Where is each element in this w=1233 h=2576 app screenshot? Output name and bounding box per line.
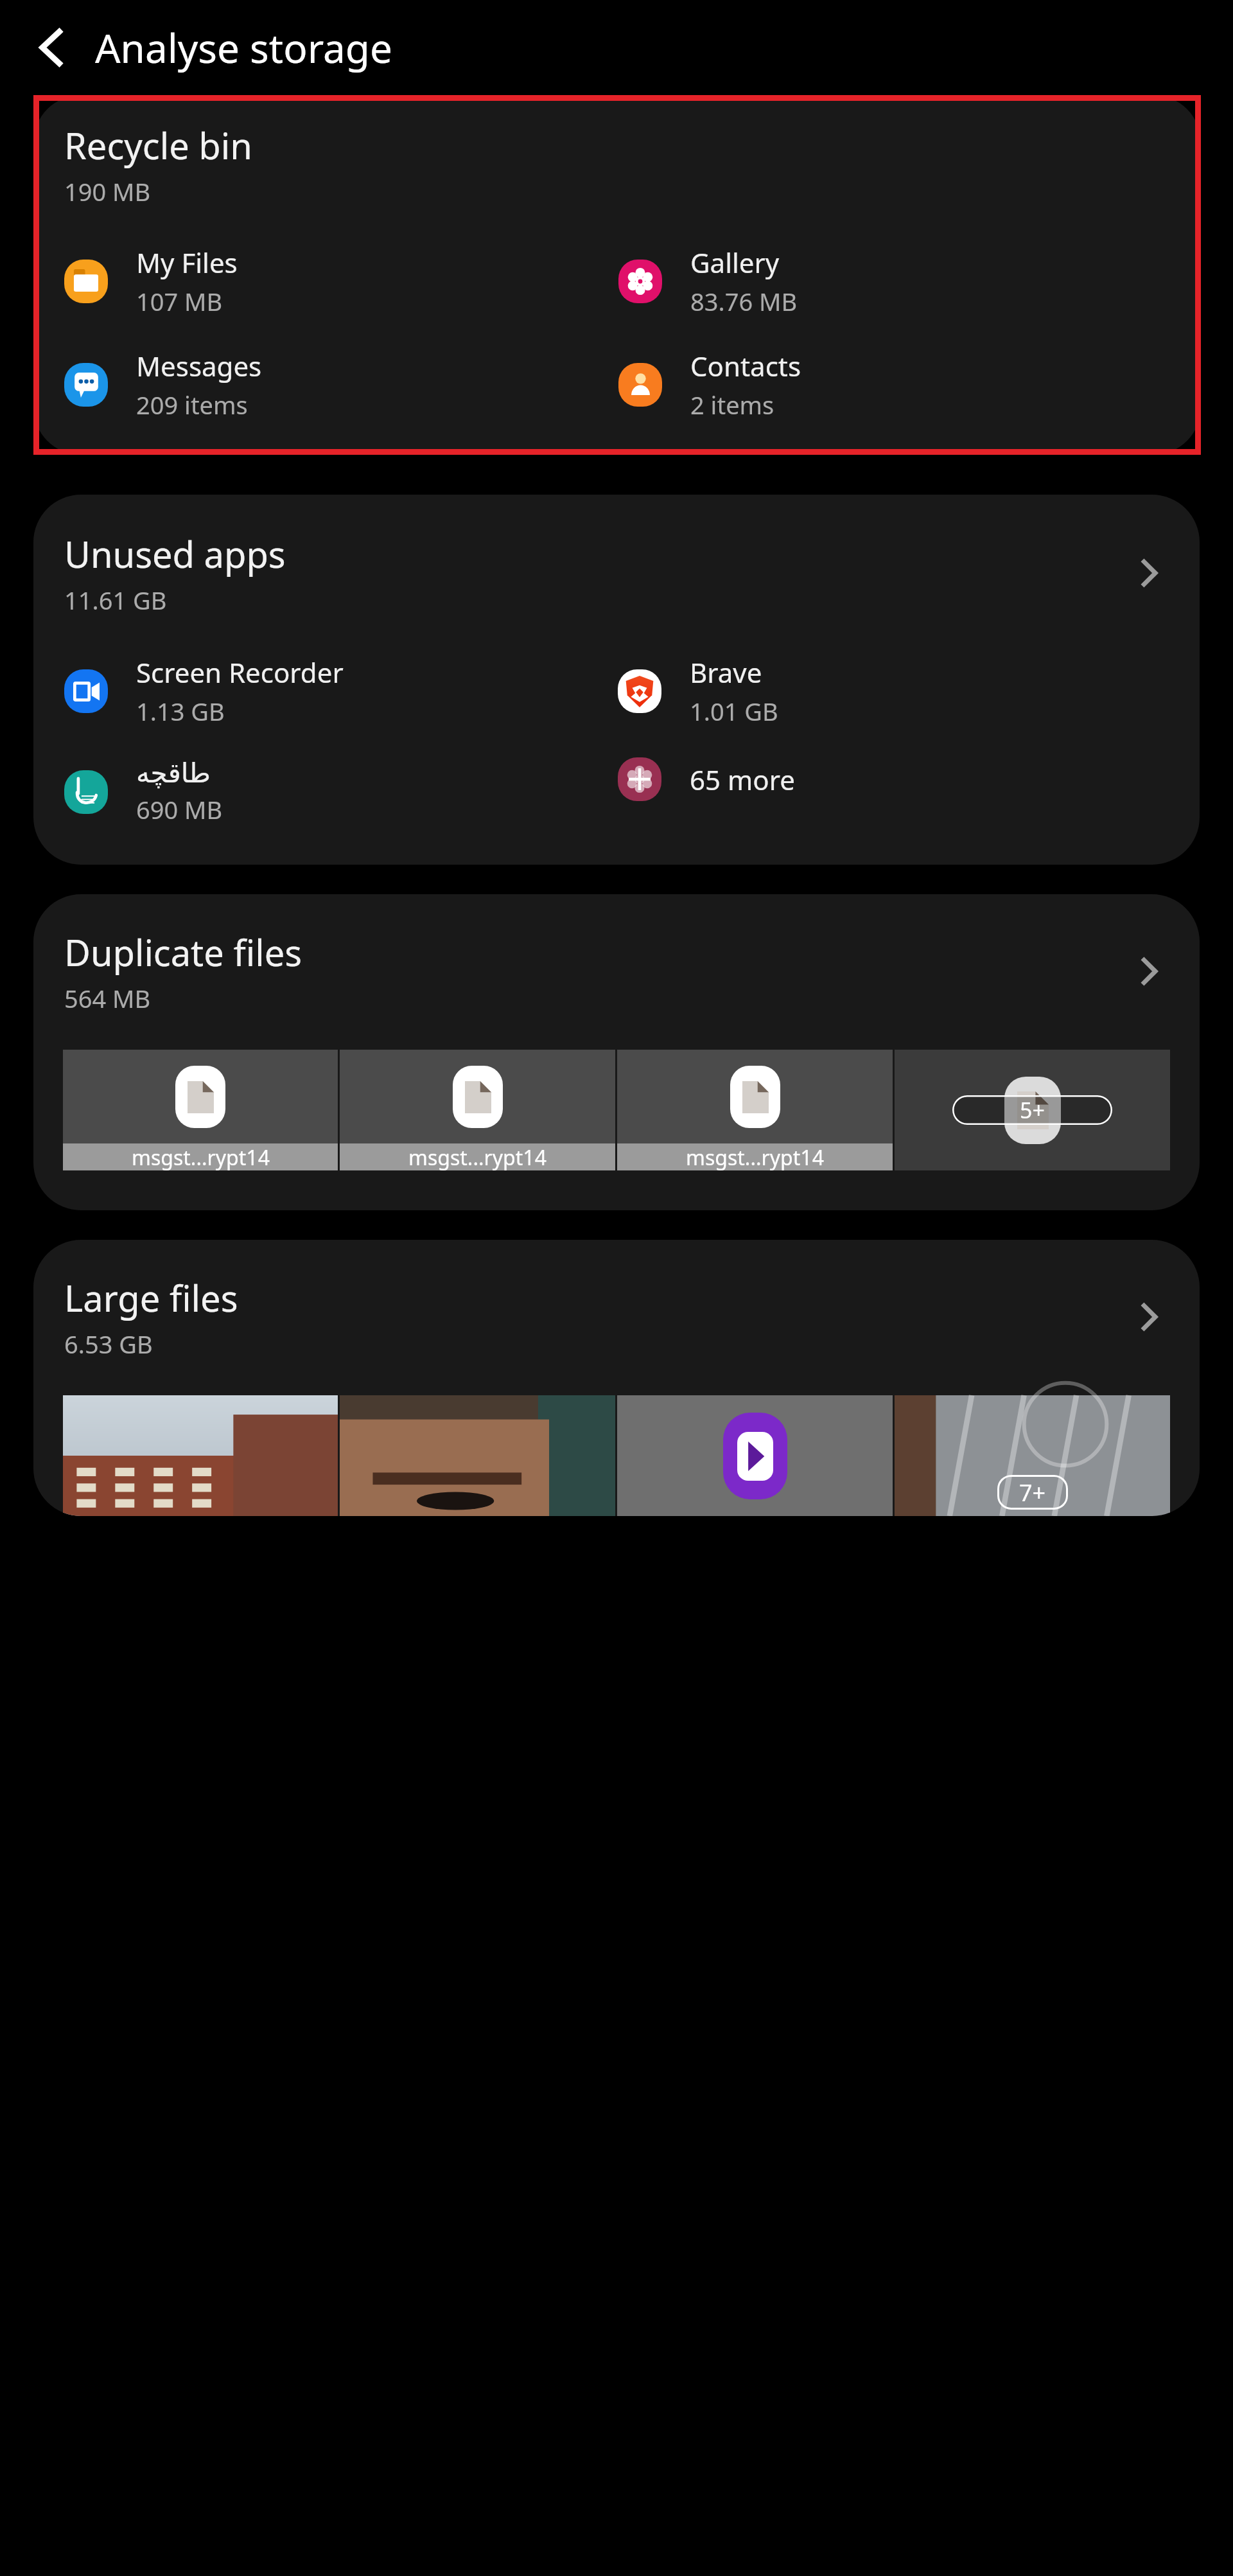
other: Open Duplicate files bbox=[1126, 949, 1171, 994]
staticText: Gallery bbox=[690, 244, 780, 281]
button[interactable]: Messages bbox=[64, 348, 618, 421]
button[interactable]: Gallery bbox=[618, 244, 1173, 318]
staticText: 11.61 GB bbox=[64, 583, 167, 617]
button[interactable] bbox=[340, 1395, 615, 1516]
staticText: Recycle bin bbox=[64, 121, 252, 170]
staticText: 107 MB bbox=[136, 285, 223, 318]
button[interactable]: msgst...rypt14 bbox=[617, 1050, 893, 1170]
staticText: 2 items bbox=[690, 388, 774, 421]
staticText: 1.01 GB bbox=[690, 694, 778, 728]
staticText: 83.76 MB bbox=[690, 285, 798, 318]
button[interactable]: msgst...rypt14 bbox=[340, 1050, 615, 1170]
button[interactable]: 5+ bbox=[895, 1050, 1170, 1170]
staticText: Duplicate files bbox=[64, 928, 302, 976]
button[interactable]: Contacts bbox=[618, 348, 1173, 421]
button[interactable]: msgst...rypt14 bbox=[63, 1050, 338, 1170]
button[interactable]: Recycle bin bbox=[33, 95, 1201, 455]
button[interactable]: طاقچه bbox=[64, 757, 618, 826]
button[interactable]: My Files bbox=[64, 244, 618, 318]
staticText: Large files bbox=[64, 1273, 238, 1322]
staticText: My Files bbox=[136, 244, 238, 281]
staticText: 690 MB bbox=[136, 793, 223, 826]
staticText: 7+ bbox=[1019, 1477, 1046, 1508]
staticText: msgst...rypt14 bbox=[132, 1143, 270, 1170]
button[interactable]: Brave bbox=[618, 654, 1171, 728]
button[interactable] bbox=[63, 1395, 338, 1516]
staticText: 1.13 GB bbox=[136, 694, 225, 728]
button[interactable]: Duplicate files bbox=[33, 894, 1200, 1210]
staticText: 564 MB bbox=[64, 982, 151, 1015]
staticText: Screen Recorder bbox=[136, 654, 344, 691]
staticText: 6.53 GB bbox=[64, 1327, 153, 1361]
other: Open Large files bbox=[1126, 1294, 1171, 1339]
button[interactable] bbox=[617, 1395, 893, 1516]
button[interactable]: Screen Recorder bbox=[64, 654, 618, 728]
staticText: 190 MB bbox=[64, 175, 151, 208]
staticText: 5+ bbox=[1020, 1095, 1045, 1125]
staticText: Messages bbox=[136, 348, 262, 384]
button[interactable]: Unused apps bbox=[33, 495, 1200, 865]
staticText: Brave bbox=[690, 654, 762, 691]
other: Open Unused apps bbox=[1126, 551, 1171, 595]
staticText: msgst...rypt14 bbox=[408, 1143, 547, 1170]
button[interactable]: 7+ bbox=[895, 1395, 1170, 1516]
button[interactable]: Back bbox=[19, 15, 83, 80]
staticText: Unused apps bbox=[64, 529, 286, 578]
staticText: طاقچه bbox=[136, 757, 211, 789]
staticText: msgst...rypt14 bbox=[686, 1143, 824, 1170]
staticText: 209 items bbox=[136, 388, 248, 421]
button[interactable]: Large files bbox=[33, 1240, 1200, 1516]
staticText: 65 more bbox=[690, 761, 795, 798]
staticText: Contacts bbox=[690, 348, 801, 384]
button[interactable]: 65 more bbox=[618, 757, 1171, 801]
staticText: Analyse storage bbox=[95, 21, 392, 75]
